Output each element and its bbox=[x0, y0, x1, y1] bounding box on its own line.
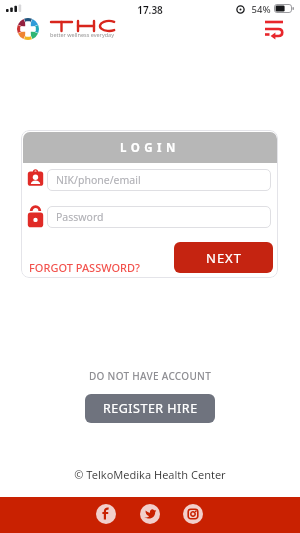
button[interactable] bbox=[262, 20, 286, 40]
staticText: © TelkoMedika Health Center bbox=[0, 467, 300, 482]
staticText: better wellness everyday bbox=[50, 31, 114, 38]
staticText: NIK/phone/email bbox=[56, 173, 141, 187]
button[interactable]: NEXT bbox=[174, 242, 273, 273]
staticText: 17.38 bbox=[0, 3, 300, 17]
staticText: Password bbox=[56, 210, 104, 224]
staticText: LOGIN bbox=[120, 140, 180, 156]
button[interactable]: Password bbox=[47, 206, 271, 228]
button[interactable]: FORGOT PASSWORD? bbox=[29, 260, 140, 275]
button[interactable]: REGISTER HIRE bbox=[85, 394, 215, 423]
staticText: 54% bbox=[250, 3, 272, 16]
button[interactable] bbox=[183, 504, 203, 524]
button[interactable]: NIK/phone/email bbox=[47, 169, 271, 191]
staticText: DO NOT HAVE ACCOUNT bbox=[0, 369, 300, 383]
staticText: REGISTER HIRE bbox=[103, 400, 198, 417]
button[interactable] bbox=[140, 504, 160, 524]
staticText: NEXT bbox=[206, 249, 242, 267]
button[interactable] bbox=[96, 504, 116, 524]
